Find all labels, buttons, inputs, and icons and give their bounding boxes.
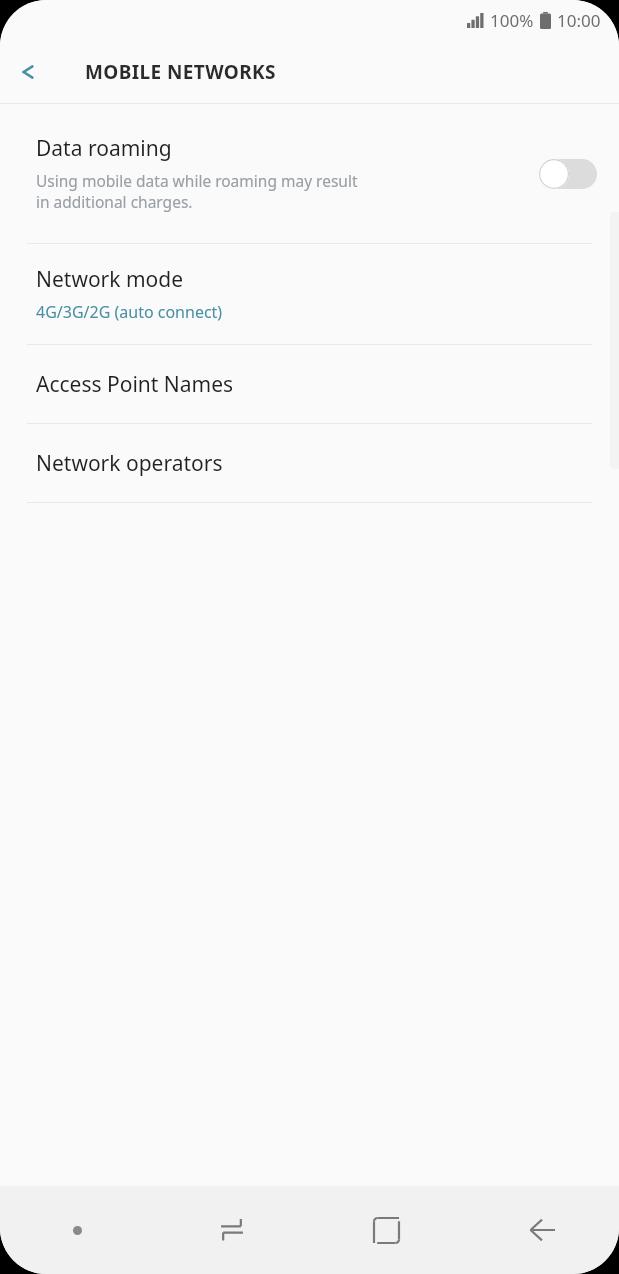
- button[interactable]: Back: [0, 44, 56, 100]
- button[interactable]: Back: [464, 1186, 619, 1274]
- button[interactable]: Access Point Names: [0, 345, 619, 423]
- button[interactable]: Network operators: [0, 424, 619, 502]
- staticText: Network operators: [36, 449, 223, 478]
- staticText: Network mode: [36, 265, 184, 294]
- staticText: Using mobile data while roaming may resu…: [36, 170, 358, 213]
- button[interactable]: Recents: [154, 1186, 309, 1274]
- staticText: 4G/3G/2G (auto connect): [36, 301, 223, 323]
- staticText: Access Point Names: [36, 370, 234, 399]
- button[interactable]: Data roaming toggle: [539, 157, 597, 191]
- staticText: Data roaming: [36, 134, 172, 163]
- button[interactable]: Home: [309, 1186, 464, 1274]
- staticText: MOBILE NETWORKS: [85, 59, 276, 85]
- staticText: 10:00: [557, 9, 601, 32]
- staticText: 100%: [490, 9, 534, 32]
- button[interactable]: Data roaming: [0, 104, 619, 243]
- button[interactable]: Network mode: [0, 244, 619, 344]
